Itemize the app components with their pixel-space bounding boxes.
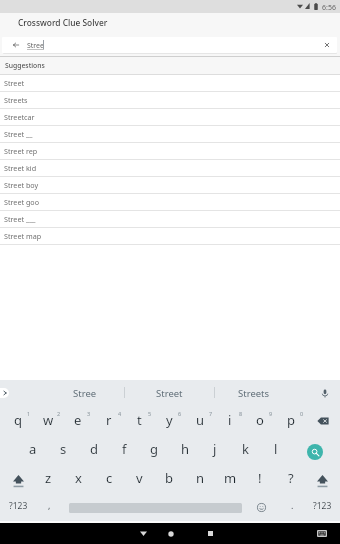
staticText: Streets xyxy=(4,95,28,105)
staticText: 2 xyxy=(57,410,61,417)
button[interactable]: Streetcar xyxy=(0,109,340,126)
button[interactable]: Street goo xyxy=(0,194,340,211)
staticText: Street boy xyxy=(4,180,39,190)
staticText: Street __ xyxy=(4,129,33,139)
button[interactable]: Street ___ xyxy=(0,211,340,228)
staticText: h xyxy=(181,440,190,458)
button[interactable]: Street rep xyxy=(0,143,340,160)
button[interactable]: Street boy xyxy=(0,177,340,194)
button[interactable]: Search xyxy=(307,444,323,460)
button[interactable]: j xyxy=(200,435,230,464)
staticText: 5 xyxy=(148,410,152,417)
button[interactable]: u xyxy=(185,406,215,435)
button[interactable]: l xyxy=(261,435,291,464)
button[interactable]: Street __ xyxy=(0,126,340,143)
button[interactable]: c xyxy=(94,464,124,493)
staticText: t xyxy=(137,411,142,429)
button[interactable]: Backspace xyxy=(306,406,340,435)
button[interactable]: Comma xyxy=(37,493,61,521)
button[interactable]: Symbols xyxy=(0,493,36,521)
staticText: Crossword Clue Solver xyxy=(18,17,108,28)
staticText: x xyxy=(75,469,82,487)
staticText: . xyxy=(291,499,294,511)
button[interactable]: o xyxy=(245,406,275,435)
button[interactable]: Street xyxy=(0,75,340,92)
button[interactable]: Symbols xyxy=(304,493,340,521)
staticText: 0 xyxy=(300,410,304,417)
staticText: p xyxy=(287,411,295,429)
staticText: k xyxy=(242,440,249,458)
button[interactable]: Back xyxy=(10,37,22,53)
button[interactable]: w xyxy=(33,406,63,435)
staticText: 9 xyxy=(269,410,273,417)
staticText: m xyxy=(224,469,237,487)
staticText: 7 xyxy=(209,410,213,417)
button[interactable]: Shift xyxy=(0,464,36,493)
staticText: z xyxy=(45,469,52,487)
staticText: Streetcar xyxy=(4,112,35,122)
button[interactable]: Back xyxy=(132,523,154,544)
staticText: Street map xyxy=(4,231,42,241)
button[interactable]: a xyxy=(18,435,48,464)
staticText: w xyxy=(43,411,54,429)
staticText: ?123 xyxy=(9,500,28,512)
button[interactable]: Shift xyxy=(304,464,340,493)
staticText: u xyxy=(196,411,205,429)
button[interactable]: Stree xyxy=(45,380,124,406)
button[interactable]: g xyxy=(139,435,169,464)
button[interactable]: Clear query xyxy=(316,37,337,53)
staticText: e xyxy=(74,411,82,429)
button[interactable]: q xyxy=(3,406,33,435)
staticText: b xyxy=(165,469,173,487)
button[interactable]: x xyxy=(63,464,93,493)
button[interactable]: y xyxy=(154,406,184,435)
staticText: r xyxy=(106,411,112,429)
staticText: , xyxy=(48,499,51,511)
button[interactable]: e xyxy=(63,406,93,435)
button[interactable]: f xyxy=(109,435,139,464)
button[interactable]: Street xyxy=(124,380,214,406)
staticText: Street xyxy=(4,78,25,88)
button[interactable]: s xyxy=(48,435,78,464)
button[interactable]: m xyxy=(215,464,245,493)
button[interactable]: p xyxy=(276,406,306,435)
button[interactable]: k xyxy=(230,435,260,464)
button[interactable]: Recent apps xyxy=(199,523,221,544)
button[interactable]: z xyxy=(33,464,63,493)
button[interactable]: Change keyboard xyxy=(311,523,333,544)
staticText: 3 xyxy=(87,410,91,417)
button[interactable]: b xyxy=(154,464,184,493)
button[interactable]: n xyxy=(185,464,215,493)
staticText: Streets xyxy=(238,387,270,400)
staticText: d xyxy=(90,440,98,458)
button[interactable]: Streets xyxy=(214,380,294,406)
staticText: 6:56 xyxy=(322,3,336,13)
button[interactable]: ? xyxy=(276,464,306,493)
staticText: y xyxy=(166,411,173,429)
button[interactable]: Period xyxy=(280,493,304,521)
staticText: Street ___ xyxy=(4,214,36,224)
staticText: Street rep xyxy=(4,146,38,156)
button[interactable]: Show more suggestions xyxy=(0,388,9,398)
button[interactable]: v xyxy=(124,464,154,493)
button[interactable]: t xyxy=(124,406,154,435)
button[interactable]: h xyxy=(170,435,200,464)
staticText: Street xyxy=(156,387,183,400)
staticText: Stree xyxy=(73,387,97,400)
button[interactable]: ! xyxy=(245,464,275,493)
staticText: 1 xyxy=(27,410,31,417)
staticText: o xyxy=(256,411,264,429)
button[interactable]: i xyxy=(215,406,245,435)
button[interactable]: Emoji xyxy=(248,493,274,521)
button[interactable]: Street map xyxy=(0,228,340,245)
button[interactable]: Voice input xyxy=(310,380,340,406)
button[interactable]: Home xyxy=(160,523,182,544)
staticText: i xyxy=(228,411,232,429)
button[interactable]: r xyxy=(94,406,124,435)
button[interactable]: d xyxy=(79,435,109,464)
button[interactable]: Streets xyxy=(0,92,340,109)
button[interactable]: Street kid xyxy=(0,160,340,177)
staticText: s xyxy=(60,440,67,458)
staticText: g xyxy=(150,440,158,458)
